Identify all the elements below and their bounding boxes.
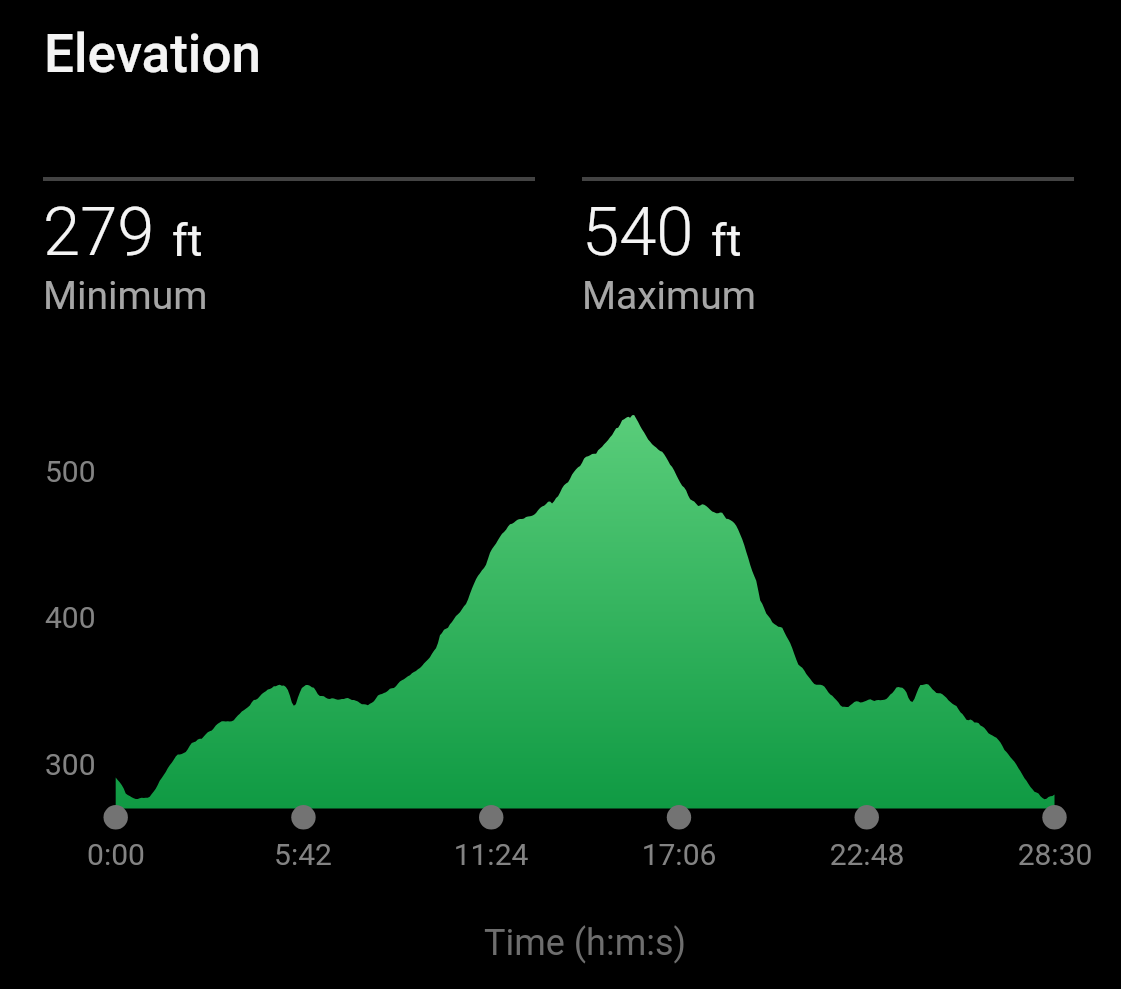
staticText: 5:42: [203, 837, 403, 872]
button[interactable]: 540: [582, 177, 1074, 322]
staticText: Time (h:m:s): [385, 922, 785, 964]
staticText: ft: [711, 214, 742, 267]
staticText: ft: [172, 214, 203, 267]
staticText: Elevation: [44, 23, 262, 85]
staticText: 279: [43, 193, 155, 272]
staticText: 17:06: [579, 837, 779, 872]
staticText: 11:24: [391, 837, 591, 872]
staticText: 400: [45, 600, 96, 635]
staticText: Maximum: [582, 273, 756, 319]
button[interactable]: Elevation profile chart: [100, 386, 1071, 831]
staticText: 300: [45, 747, 96, 782]
staticText: 28:30: [955, 837, 1121, 872]
button[interactable]: 279: [43, 177, 535, 322]
staticText: 500: [45, 454, 96, 489]
staticText: 540: [582, 193, 694, 272]
staticText: 22:48: [767, 837, 967, 872]
staticText: Minimum: [43, 273, 208, 319]
staticText: 0:00: [16, 837, 216, 872]
